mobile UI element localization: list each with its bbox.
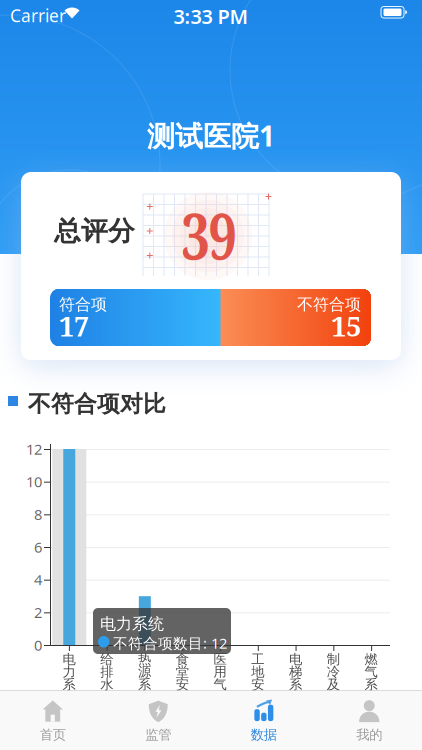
staticText: 系 xyxy=(365,678,378,691)
staticText: 电力系统 xyxy=(100,614,164,634)
staticText: 总评分 xyxy=(54,215,135,247)
staticText: 安 xyxy=(251,678,264,691)
staticText: 系 xyxy=(289,678,302,691)
staticText: 地 xyxy=(251,666,264,678)
staticText: 符合项 xyxy=(59,295,107,314)
staticText: 0 xyxy=(34,635,42,655)
staticText: 测试医院1 xyxy=(147,117,275,154)
staticText: 制 xyxy=(327,653,340,666)
button[interactable]: 数据 xyxy=(211,691,316,750)
staticText: 2 xyxy=(34,603,42,622)
staticText: 8 xyxy=(34,505,42,524)
staticText: 监管 xyxy=(145,727,171,743)
staticText: 工 xyxy=(251,653,264,666)
staticText: 系 xyxy=(62,678,75,691)
staticText: 燃 xyxy=(365,653,378,666)
button[interactable]: 首页 xyxy=(0,691,105,750)
staticText: 不符合项数目: 12 xyxy=(113,633,227,653)
staticText: 12 xyxy=(26,439,42,459)
staticText: 系 xyxy=(138,678,151,691)
staticText: 17 xyxy=(59,307,89,345)
staticText: 我的 xyxy=(356,727,382,743)
staticText: 给 xyxy=(100,653,113,666)
staticText: 源 xyxy=(138,666,151,678)
staticText: 堂 xyxy=(176,666,189,678)
staticText: 39 xyxy=(174,191,244,279)
staticText: 水 xyxy=(100,678,113,691)
staticText: 3:33 PM xyxy=(173,3,248,30)
staticText: 及 xyxy=(327,678,340,691)
staticText: 食 xyxy=(176,653,189,666)
staticText: 不符合项对比 xyxy=(28,390,166,418)
staticText: 首页 xyxy=(40,727,66,743)
staticText: 排 xyxy=(100,666,113,678)
staticText: 6 xyxy=(34,537,42,557)
staticText: 气 xyxy=(213,678,226,691)
staticText: Carrier xyxy=(10,4,66,27)
staticText: 梯 xyxy=(289,666,302,678)
staticText: 用 xyxy=(213,666,226,678)
staticText: 安 xyxy=(176,678,189,691)
staticText: 数据 xyxy=(251,727,277,743)
staticText: 电 xyxy=(289,653,302,666)
button[interactable]: 我的 xyxy=(316,691,422,750)
staticText: 10 xyxy=(26,472,42,491)
staticText: 医 xyxy=(213,653,226,666)
staticText: 15 xyxy=(331,307,361,345)
staticText: 4 xyxy=(34,570,42,589)
button[interactable]: 监管 xyxy=(105,691,211,750)
staticText: 电 xyxy=(62,653,75,666)
staticText: 不符合项 xyxy=(297,295,361,314)
staticText: 热 xyxy=(138,653,151,666)
staticText: 力 xyxy=(62,666,75,678)
staticText: 冷 xyxy=(327,666,340,678)
staticText: 气 xyxy=(365,666,378,678)
